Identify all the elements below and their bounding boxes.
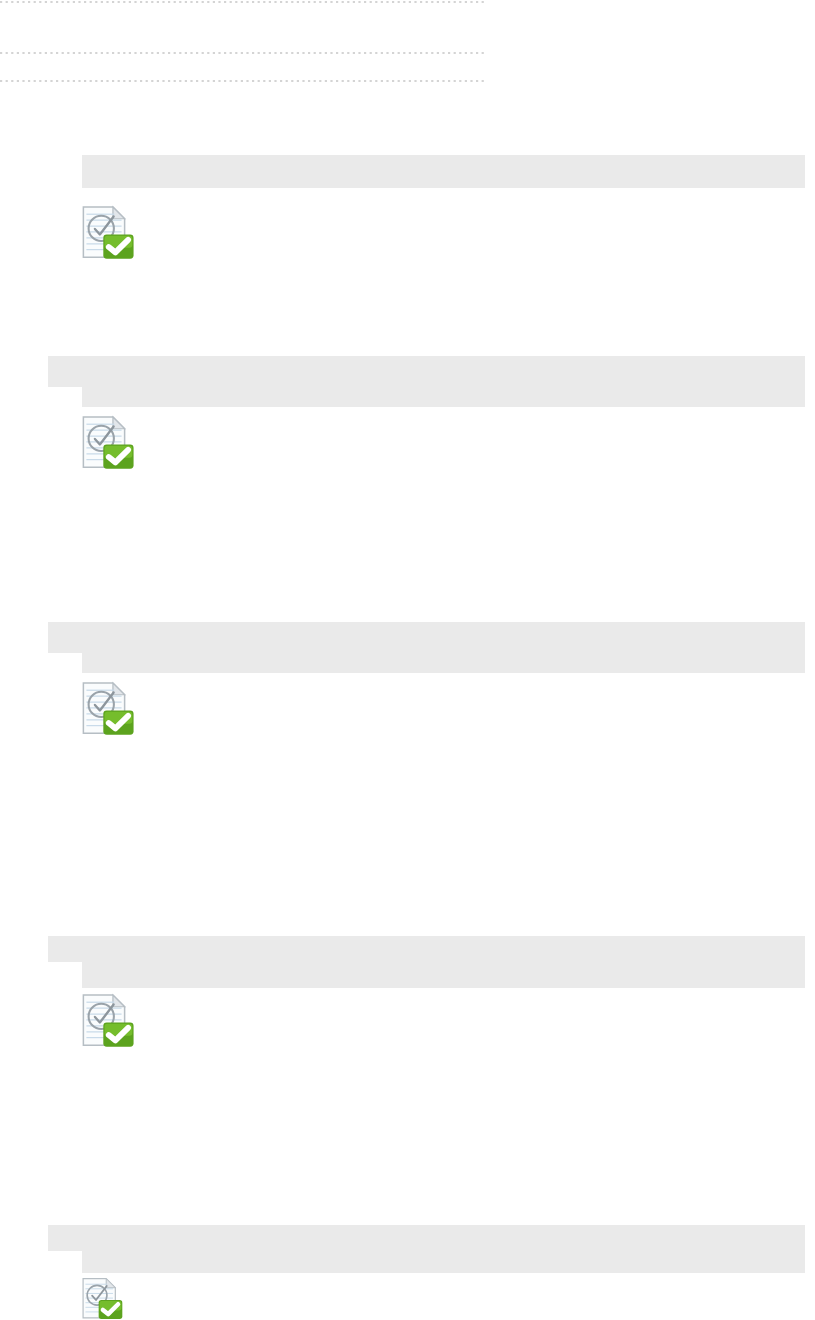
button[interactable]: Approved document (82, 993, 137, 1048)
button[interactable]: Approved document (82, 205, 137, 260)
button[interactable]: Approved document (82, 681, 137, 736)
button[interactable]: Approved document (82, 1277, 137, 1320)
button[interactable]: Approved document (82, 415, 137, 470)
